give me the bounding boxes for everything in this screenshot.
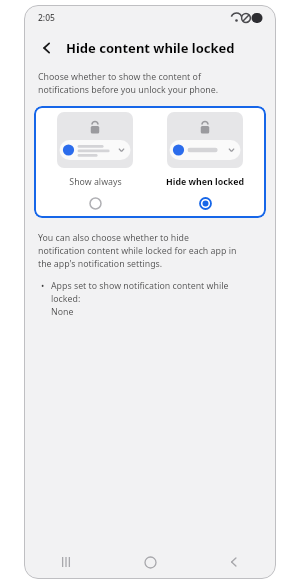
button[interactable]: Home <box>108 545 192 579</box>
button[interactable]: Hide when locked <box>196 194 214 212</box>
button[interactable]: Back <box>192 545 276 579</box>
staticText: Hide content while locked <box>66 39 235 57</box>
button[interactable]: Show always <box>45 112 145 212</box>
staticText: Show always <box>69 176 122 188</box>
button[interactable]: Show always <box>86 194 104 212</box>
button[interactable]: Recent apps <box>24 545 108 579</box>
staticText: Hide when locked <box>166 176 244 188</box>
staticText: Choose whether to show the content of no… <box>38 71 219 96</box>
staticText: You can also choose whether to hide noti… <box>38 232 237 270</box>
staticText: • <box>41 280 45 292</box>
staticText: Apps set to show notification content wh… <box>51 280 229 318</box>
staticText: 2:05 <box>38 12 55 24</box>
button[interactable]: Hide when locked <box>155 112 255 212</box>
button[interactable]: Back <box>36 37 58 59</box>
